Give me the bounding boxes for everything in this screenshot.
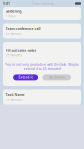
staticText: No thanks bbox=[49, 75, 64, 79]
staticText: 9:41 bbox=[3, 1, 10, 6]
staticText: Gardening bbox=[5, 9, 21, 13]
staticText: 1 hour bbox=[5, 14, 15, 18]
staticText: Timer running bbox=[31, 1, 53, 5]
staticText: Fill out sales notes bbox=[5, 48, 36, 53]
staticText: 25 minutes bbox=[5, 53, 21, 57]
button[interactable]: Task Name bbox=[3, 89, 81, 104]
staticText: You're not very productive with this tas… bbox=[5, 63, 79, 71]
staticText: Task Name bbox=[5, 92, 24, 97]
button[interactable]: Team conference call bbox=[3, 23, 81, 38]
staticText: 15 minutes bbox=[5, 98, 21, 101]
button[interactable]: No thanks bbox=[42, 74, 71, 80]
staticText: 45 minutes bbox=[5, 32, 21, 35]
staticText: Team conference call bbox=[5, 26, 40, 31]
button[interactable]: Gardening bbox=[3, 7, 81, 20]
staticText: Extend it bbox=[19, 75, 33, 79]
button[interactable]: Extend it bbox=[13, 74, 38, 80]
